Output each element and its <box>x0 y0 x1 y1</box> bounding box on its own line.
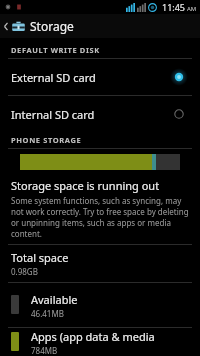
staticText: 46.41MB <box>31 308 64 319</box>
staticText: Total space <box>11 250 69 265</box>
staticText: DEFAULT WRITE DISK <box>11 45 100 55</box>
staticText: 784MB <box>31 345 58 356</box>
staticText: External SD card <box>11 70 172 85</box>
staticText: Available <box>31 292 78 307</box>
staticText: AM <box>187 5 197 13</box>
staticText: Storage space is running out <box>11 178 160 193</box>
staticText: Storage <box>30 18 74 34</box>
button[interactable]: External SD card <box>0 59 200 95</box>
button[interactable]: Total space <box>0 245 200 282</box>
staticText: PHONE STORAGE <box>11 135 82 145</box>
staticText: 0.98GB <box>11 266 38 277</box>
staticText: Apps (app data & media content) <box>31 329 192 344</box>
staticText: Some system functions, such as syncing, … <box>11 195 189 239</box>
button[interactable]: Navigate up <box>0 17 32 36</box>
staticText: Internal SD card <box>11 107 172 122</box>
button[interactable]: Available <box>0 283 200 327</box>
button[interactable]: Apps (app data & media content) <box>0 328 200 356</box>
button[interactable]: Internal SD card <box>0 96 200 132</box>
staticText: 11:45 <box>162 1 186 13</box>
